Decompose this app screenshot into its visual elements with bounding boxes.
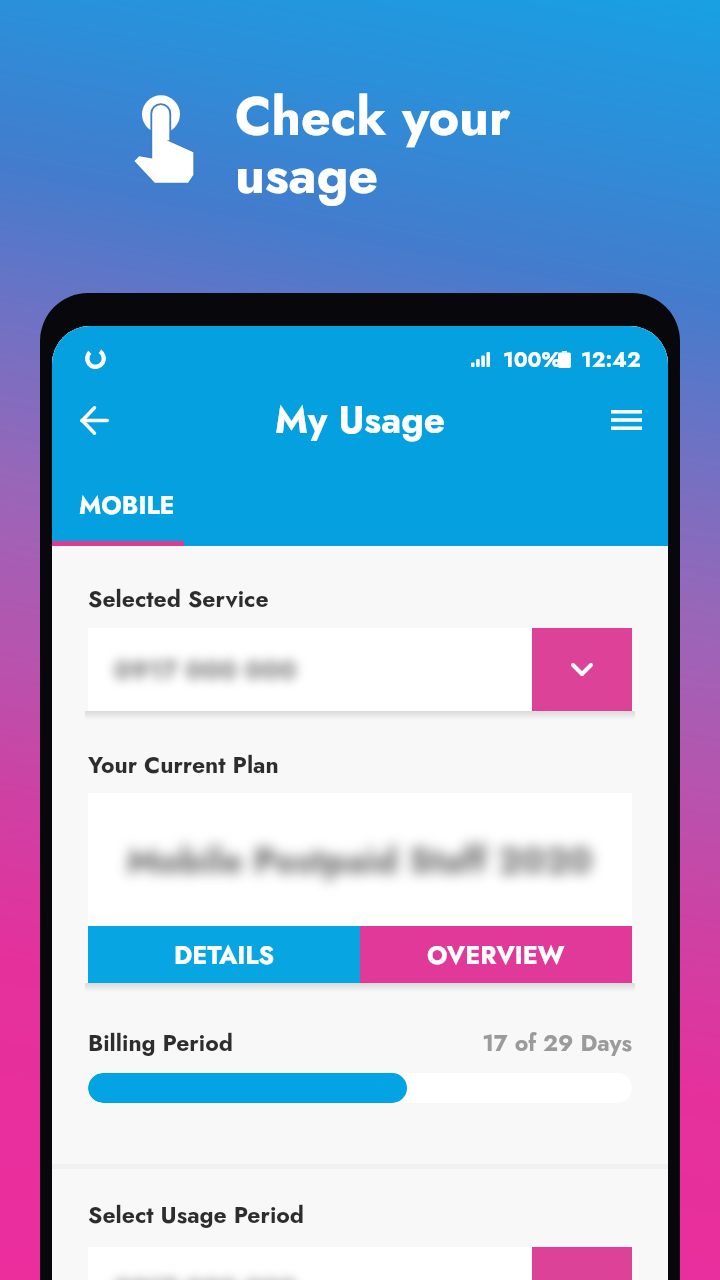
button[interactable]: DETAILS [88, 926, 360, 983]
staticText: Check your usage [235, 79, 511, 212]
button[interactable]: Back [67, 393, 121, 447]
staticText: 0917 000 000 [114, 1270, 297, 1280]
button[interactable]: 0917 000 000 [88, 628, 632, 711]
staticText: Selected Service [88, 582, 269, 615]
staticText: Billing Period [88, 1026, 233, 1059]
staticText: DETAILS [174, 937, 275, 973]
staticText: OVERVIEW [427, 937, 565, 973]
staticText: MOBILE [79, 487, 175, 523]
button[interactable]: Menu [599, 393, 653, 447]
button[interactable]: 0917 000 000 [88, 1247, 632, 1280]
button[interactable]: OVERVIEW [360, 926, 632, 983]
button[interactable]: MOBILE [52, 466, 184, 546]
staticText: 0917 000 000 [114, 651, 297, 689]
staticText: Mobile Postpaid Staff 2020 [127, 834, 593, 886]
staticText: My Usage [52, 393, 668, 446]
staticText: 100% [503, 345, 561, 375]
staticText: 12:42 [581, 345, 641, 375]
staticText: 17 of 29 Days [52, 1026, 632, 1059]
staticText: Select Usage Period [88, 1198, 305, 1231]
staticText: Your Current Plan [88, 748, 279, 781]
